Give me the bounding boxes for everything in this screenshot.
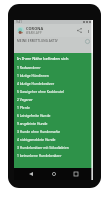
staticText: WARN-APP: [26, 31, 42, 35]
staticText: 4 nichtgemeldete Hunde: [17, 137, 56, 141]
staticText: 6 Leistgefreite Hunde: [17, 113, 51, 117]
button[interactable]: 1 Pferde: [14, 103, 93, 111]
button[interactable]: 1 Radwanderer: [14, 63, 93, 71]
button[interactable]: 5 Gassigeher ohne Kackbeutel: [14, 87, 93, 95]
staticText: 9 angeleinte Hunde: [17, 121, 48, 125]
staticText: In Ihrer Nähe befinden sich: [17, 56, 69, 61]
button[interactable]: 2 Veganer: [14, 95, 93, 103]
button[interactable]: Weitere Optionen: [84, 27, 92, 35]
button[interactable]: Startseite: [49, 169, 59, 179]
staticText: 1 betrunkene Hundebesitzer: [17, 153, 62, 157]
staticText: 4 blutige Hundebesitzer: [17, 81, 55, 85]
staticText: 1 blutige Hündinnen: [17, 73, 49, 77]
staticText: CORONA: [26, 26, 44, 31]
button[interactable]: 4 blutige Hundebesitzer: [14, 79, 93, 87]
staticText: 5 Gassigeher ohne Kackbeutel: [17, 89, 64, 93]
staticText: 1 Radwanderer: [17, 65, 41, 69]
staticText: 1 Pferde: [17, 105, 30, 109]
button[interactable]: 6 Leistgefreite Hunde: [14, 111, 93, 119]
staticText: 2 Veganer: [17, 97, 33, 101]
button[interactable]: 3 Hunde ohne Hundemarke: [14, 127, 93, 135]
button[interactable]: 3 Hundebesitzer mit Säkodialeien: [14, 143, 93, 151]
staticText: 3 Hunde ohne Hundemarke: [17, 129, 61, 133]
button[interactable]: 9 angeleinte Hunde: [14, 119, 93, 127]
button[interactable]: Zurück: [26, 169, 36, 179]
staticText: 9:41: [16, 20, 22, 24]
button[interactable]: Teilen: [75, 26, 84, 35]
button[interactable]: Übersicht: [71, 169, 81, 179]
button[interactable]: MEINE ERMITTLUNG AKTIV: [14, 37, 93, 45]
staticText: 3 Hundebesitzer mit Säkodialeien: [17, 145, 69, 149]
button[interactable]: 1 betrunkene Hundebesitzer: [14, 151, 93, 159]
button[interactable]: 1 blutige Hündinnen: [14, 71, 93, 79]
button[interactable]: 4 nichtgemeldete Hunde: [14, 135, 93, 143]
staticText: MEINE ERMITTLUNG AKTIV: [17, 39, 58, 43]
